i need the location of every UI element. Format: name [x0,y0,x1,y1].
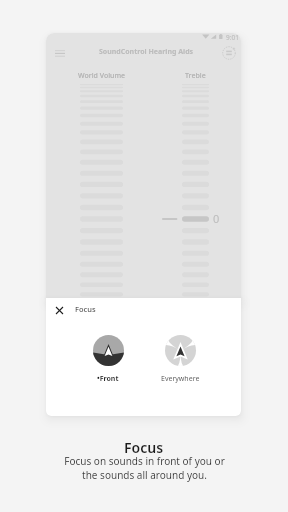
staticText: 9:01 [226,33,239,42]
staticText: Focus [75,304,96,314]
staticText: Focus [124,438,164,457]
staticText: 0 [213,211,220,226]
button[interactable]: •Front [78,335,138,384]
button[interactable]: Close [51,302,68,319]
staticText: •Front [97,374,119,384]
staticText: Focus on sounds in front of you or the s… [64,454,225,482]
button[interactable]: Account [220,44,238,62]
button[interactable]: Everywhere [150,335,210,384]
button[interactable]: Menu [50,46,70,61]
staticText: World Volume [78,71,126,81]
staticText: SoundControl Hearing Aids [99,47,194,57]
staticText: Treble [185,71,206,81]
staticText: Everywhere [161,374,200,384]
